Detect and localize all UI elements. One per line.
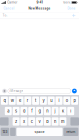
- button[interactable]: m: [59, 117, 66, 126]
- staticText: return: [66, 130, 75, 134]
- button[interactable]: f: [28, 107, 35, 115]
- staticText: s: [15, 109, 17, 113]
- button[interactable]: z: [13, 117, 20, 126]
- staticText: New Message: [28, 7, 50, 10]
- button[interactable]: s: [13, 107, 20, 115]
- button[interactable]: [70, 117, 79, 126]
- staticText: Done: [67, 7, 75, 10]
- staticText: u: [50, 98, 52, 103]
- button[interactable]: n: [52, 117, 59, 126]
- staticText: o: [66, 98, 68, 103]
- button[interactable]: [10, 128, 16, 136]
- button[interactable]: space: [16, 128, 62, 136]
- button[interactable]: t: [32, 96, 39, 105]
- button[interactable]: e: [16, 96, 23, 105]
- button[interactable]: Add contact: [71, 13, 76, 18]
- staticText: To:: [2, 14, 7, 17]
- button[interactable]: g: [36, 107, 43, 115]
- staticText: Carrier: [7, 1, 17, 4]
- staticText: e: [19, 98, 21, 103]
- button[interactable]: y: [40, 96, 47, 105]
- staticText: w: [11, 98, 14, 103]
- staticText: iMessage: [9, 89, 23, 93]
- staticText: x: [23, 119, 25, 124]
- staticText: 9:41: [36, 1, 42, 4]
- button[interactable]: h: [44, 107, 51, 115]
- staticText: q: [3, 98, 5, 103]
- staticText: a: [7, 109, 9, 113]
- staticText: y: [42, 98, 44, 103]
- staticText: 123: [2, 130, 7, 134]
- button[interactable]: a: [5, 107, 12, 115]
- button[interactable]: v: [36, 117, 43, 126]
- button[interactable]: x: [20, 117, 27, 126]
- staticText: p: [74, 98, 76, 103]
- button[interactable]: j: [52, 107, 59, 115]
- staticText: c: [31, 119, 33, 124]
- button[interactable]: Cancel: [2, 5, 16, 12]
- button[interactable]: k: [59, 107, 66, 115]
- button[interactable]: c: [28, 117, 35, 126]
- button[interactable]: w: [9, 96, 16, 105]
- button[interactable]: p: [71, 96, 78, 105]
- button[interactable]: Send: [71, 89, 78, 93]
- button[interactable]: r: [24, 96, 31, 105]
- button[interactable]: Done: [66, 5, 77, 12]
- staticText: 100%: [63, 1, 71, 4]
- staticText: t: [35, 98, 36, 103]
- button[interactable]: Add attachment: [1, 89, 8, 93]
- staticText: k: [62, 109, 64, 113]
- staticText: r: [27, 98, 29, 103]
- staticText: m: [61, 119, 65, 124]
- staticText: d: [23, 109, 25, 113]
- staticText: i: [58, 98, 59, 103]
- button[interactable]: q: [1, 96, 8, 105]
- button[interactable]: u: [48, 96, 55, 105]
- staticText: b: [46, 119, 48, 124]
- button[interactable]: i: [55, 96, 62, 105]
- button[interactable]: o: [63, 96, 70, 105]
- staticText: Cancel: [3, 7, 14, 10]
- staticText: l: [70, 109, 71, 113]
- button[interactable]: l: [67, 107, 74, 115]
- button[interactable]: 123: [1, 128, 9, 136]
- staticText: j: [55, 109, 56, 113]
- button[interactable]: b: [44, 117, 51, 126]
- button[interactable]: return: [63, 128, 78, 136]
- staticText: f: [31, 109, 32, 113]
- staticText: z: [15, 119, 17, 124]
- staticText: h: [46, 109, 48, 113]
- button[interactable]: d: [20, 107, 27, 115]
- staticText: g: [38, 109, 40, 113]
- staticText: n: [54, 119, 56, 124]
- staticText: v: [38, 119, 40, 124]
- button[interactable]: [0, 117, 9, 126]
- staticText: space: [34, 130, 44, 134]
